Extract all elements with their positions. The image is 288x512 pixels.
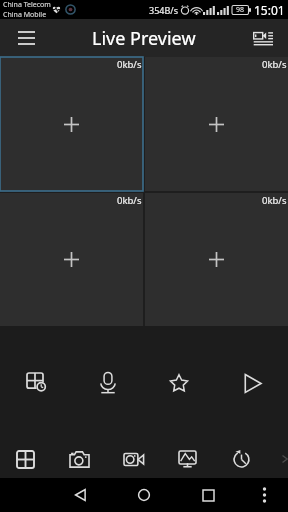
staticText: 0kb/s: [262, 58, 287, 71]
button[interactable]: Playback: [160, 440, 214, 478]
button[interactable]: Add camera channel: [145, 193, 288, 326]
button[interactable]: More options: [249, 480, 279, 510]
button[interactable]: Add camera channel: [145, 57, 288, 191]
button[interactable]: Split view: [0, 440, 52, 478]
button[interactable]: Add camera channel: [0, 193, 143, 326]
staticText: 354B/s: [149, 4, 178, 16]
button[interactable]: Microphone: [88, 361, 128, 401]
button[interactable]: Channel list: [244, 19, 282, 57]
button[interactable]: Home: [126, 478, 162, 512]
button[interactable]: Recent apps: [190, 478, 226, 512]
staticText: 0kb/s: [117, 58, 142, 71]
button[interactable]: More tools: [275, 449, 288, 469]
staticText: China Telecom: [3, 0, 51, 10]
staticText: 98: [236, 5, 245, 15]
button[interactable]: Snapshot: [52, 440, 106, 478]
staticText: 0kb/s: [117, 194, 142, 207]
button[interactable]: Add camera channel: [0, 57, 143, 191]
button[interactable]: Favorite: [160, 361, 200, 401]
button[interactable]: Play all: [232, 361, 272, 401]
staticText: China Mobile: [3, 10, 47, 19]
button[interactable]: Back: [62, 478, 98, 512]
staticText: 0kb/s: [262, 194, 287, 207]
staticText: 15:01: [254, 2, 285, 18]
button[interactable]: Split screen layout: [16, 361, 56, 401]
button[interactable]: Menu: [7, 19, 45, 57]
staticText: Live Preview: [92, 26, 196, 51]
button[interactable]: History: [214, 440, 268, 478]
button[interactable]: Record video: [106, 440, 160, 478]
